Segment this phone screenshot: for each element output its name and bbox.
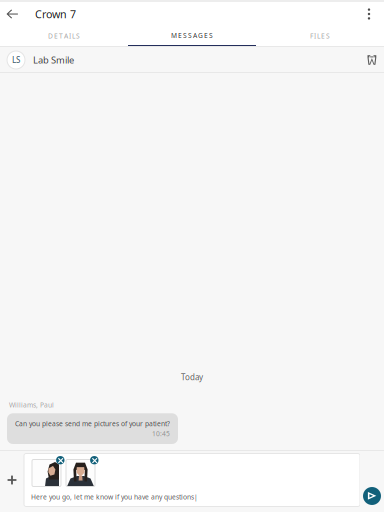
button[interactable]: Back [0, 2, 24, 26]
button[interactable]: Add attachment [0, 453, 24, 506]
button[interactable]: F I L E S [256, 26, 384, 47]
staticText: D E T A I L S [48, 32, 80, 40]
staticText: M E S S A G E S [171, 31, 213, 40]
staticText: Williams, Paul [9, 400, 54, 409]
staticText: Crown 7 [35, 7, 76, 21]
button[interactable]: D E T A I L S [0, 26, 128, 47]
staticText: Lab Smile [33, 54, 74, 66]
button[interactable]: More options [357, 2, 381, 26]
staticText: Here you go, let me know if you have any… [31, 492, 198, 501]
staticText: Today [181, 372, 203, 382]
button[interactable]: M E S S A G E S [128, 26, 256, 47]
button[interactable]: Send [363, 487, 381, 505]
staticText: 10:45 [152, 429, 170, 438]
staticText: F I L E S [310, 32, 330, 40]
staticText: Can you please send me pictures of your … [15, 419, 170, 428]
staticText: LS [12, 55, 20, 65]
button[interactable]: Dental chart [360, 47, 384, 72]
